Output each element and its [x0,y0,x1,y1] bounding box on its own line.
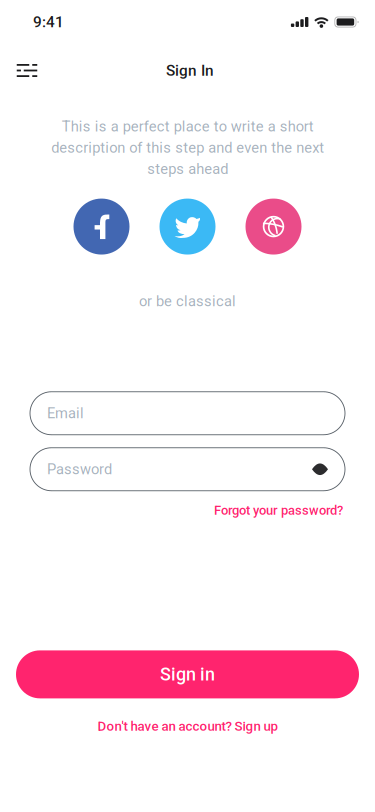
staticText: Sign In [166,61,214,79]
staticText: 9:41 [33,13,64,31]
button[interactable]: Sign in with Facebook [73,199,129,255]
button[interactable]: Forgot your password? [214,503,343,518]
button[interactable]: Menu [5,48,49,92]
staticText: Sign in [160,664,215,685]
staticText: Password [47,461,112,478]
button[interactable]: Don't have an account? Sign up [97,718,277,734]
button[interactable]: Sign in with Twitter [159,199,215,255]
button[interactable]: Show password [305,454,335,484]
staticText: Email [47,405,84,422]
staticText: or be classical [139,293,236,310]
button[interactable]: Sign in [16,650,359,698]
staticText: Forgot your password? [214,503,343,518]
staticText: Don't have an account? Sign up [97,718,277,734]
button[interactable]: Sign in with Dribbble [245,199,301,255]
staticText: This is a perfect place to write a short… [51,118,324,178]
